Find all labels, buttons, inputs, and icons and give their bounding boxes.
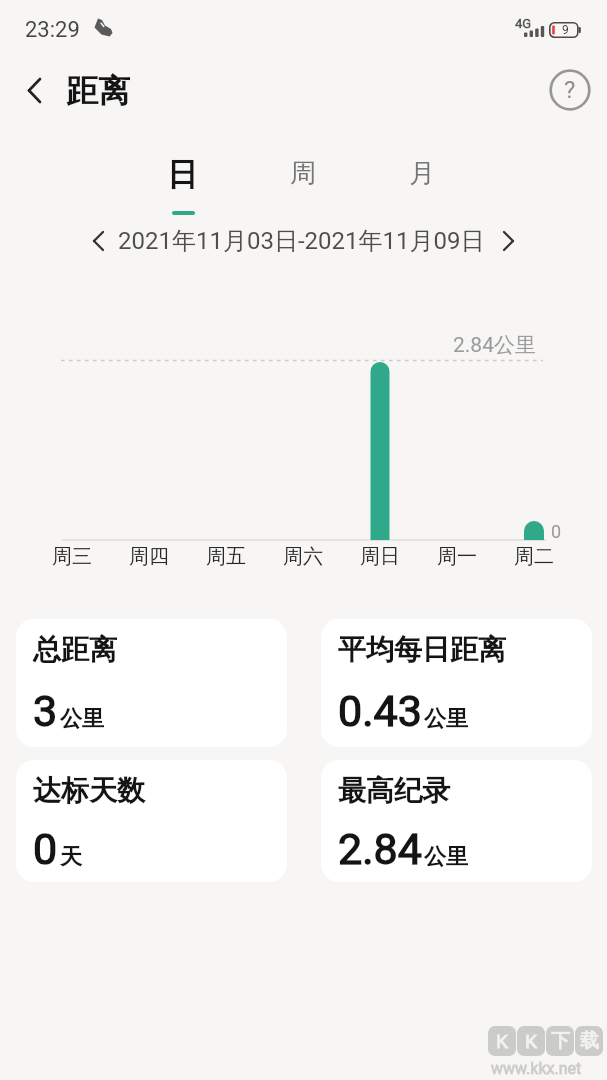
staticText: 9 xyxy=(562,23,569,37)
staticText: K xyxy=(496,1030,508,1052)
button[interactable] xyxy=(490,223,526,259)
staticText: 周六 xyxy=(283,544,323,569)
staticText: 平均每日距离 xyxy=(338,632,506,667)
staticText: 2021年11月03日-2021年11月09日 xyxy=(118,226,485,256)
staticText: 月 xyxy=(409,157,435,190)
button[interactable]: ? xyxy=(548,68,592,112)
staticText: 天 xyxy=(60,843,82,871)
staticText: 下 xyxy=(551,1029,570,1053)
staticText: 周三 xyxy=(52,544,92,569)
button[interactable]: 最高纪录 xyxy=(321,760,592,882)
staticText: 公里 xyxy=(424,705,468,733)
staticText: 日 xyxy=(167,155,198,194)
staticText: 周日 xyxy=(360,544,400,569)
button[interactable]: 达标天数 xyxy=(16,760,287,882)
staticText: 23:29 xyxy=(25,17,80,43)
staticText: 最高纪录 xyxy=(338,773,450,808)
button[interactable]: 平均每日距离 xyxy=(321,619,592,747)
button[interactable] xyxy=(80,223,116,259)
staticText: www.kkx.net xyxy=(491,1059,582,1078)
staticText: 2.84 xyxy=(338,824,422,874)
button[interactable] xyxy=(14,70,54,110)
staticText: 载 xyxy=(580,1029,599,1053)
staticText: 公里 xyxy=(60,705,104,733)
staticText: 周四 xyxy=(129,544,169,569)
button[interactable]: 总距离 xyxy=(16,619,287,747)
staticText: 0 xyxy=(551,521,562,542)
button[interactable]: 日 xyxy=(102,144,262,204)
staticText: 公里 xyxy=(424,843,468,871)
staticText: 总距离 xyxy=(33,632,117,667)
staticText: 4G xyxy=(515,16,532,31)
staticText: 周一 xyxy=(437,544,477,569)
staticText: 0 xyxy=(33,824,58,874)
staticText: 2.84公里 xyxy=(453,332,536,356)
staticText: ? xyxy=(564,76,576,104)
button[interactable]: 月 xyxy=(342,143,502,203)
staticText: 周 xyxy=(290,157,316,190)
button[interactable]: 周 xyxy=(223,143,383,203)
staticText: 距离 xyxy=(66,71,130,111)
staticText: K xyxy=(525,1030,537,1052)
staticText: 3 xyxy=(33,686,58,736)
staticText: 达标天数 xyxy=(33,773,145,808)
staticText: 0.43 xyxy=(338,686,422,736)
staticText: 周二 xyxy=(514,544,554,569)
staticText: 周五 xyxy=(206,544,246,569)
